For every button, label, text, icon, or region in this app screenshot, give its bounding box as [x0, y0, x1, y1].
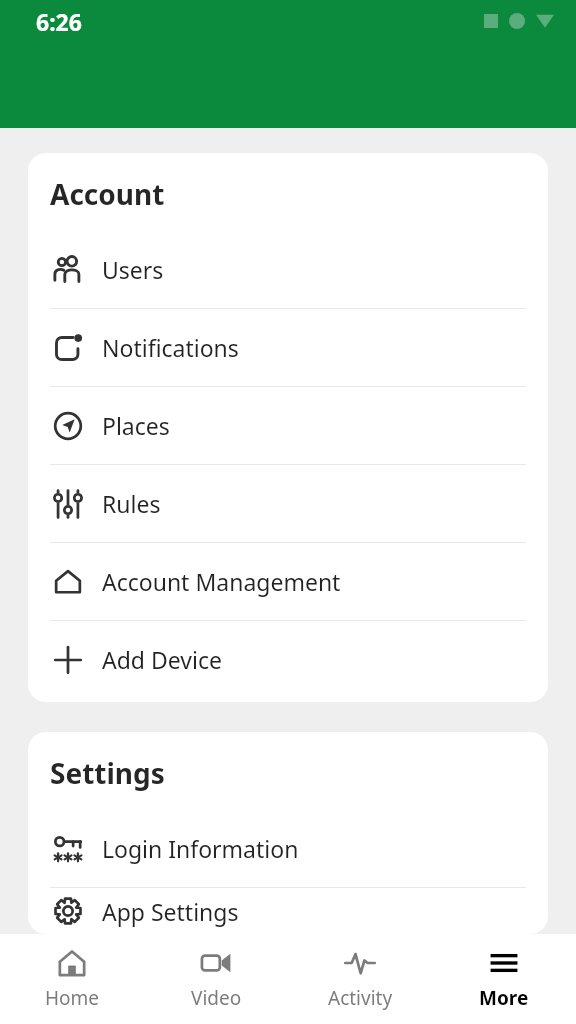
- staticText: Account: [50, 175, 165, 213]
- staticText: More: [479, 985, 529, 1011]
- button[interactable]: Activity: [288, 934, 432, 1024]
- staticText: Activity: [328, 985, 393, 1011]
- staticText: Add Device: [102, 644, 222, 675]
- button[interactable]: Video: [144, 934, 288, 1024]
- button[interactable]: Places: [28, 387, 548, 464]
- button[interactable]: Notifications: [28, 309, 548, 386]
- button[interactable]: Account Management: [28, 543, 548, 620]
- staticText: Places: [102, 410, 170, 441]
- staticText: Home: [45, 985, 100, 1011]
- button[interactable]: More: [432, 934, 576, 1024]
- button[interactable]: Rules: [28, 465, 548, 542]
- button[interactable]: App Settings: [28, 888, 548, 934]
- button[interactable]: Users: [28, 231, 548, 308]
- button[interactable]: Login Information: [28, 810, 548, 887]
- staticText: Account Management: [102, 566, 341, 597]
- staticText: Video: [191, 985, 242, 1011]
- button[interactable]: Add Device: [28, 621, 548, 698]
- staticText: Settings: [50, 754, 165, 792]
- staticText: Notifications: [102, 332, 239, 363]
- staticText: App Settings: [102, 896, 239, 927]
- staticText: Users: [102, 254, 164, 285]
- staticText: Login Information: [102, 833, 299, 864]
- button[interactable]: Home: [0, 934, 144, 1024]
- staticText: Rules: [102, 488, 161, 519]
- staticText: 6:26: [36, 6, 82, 37]
